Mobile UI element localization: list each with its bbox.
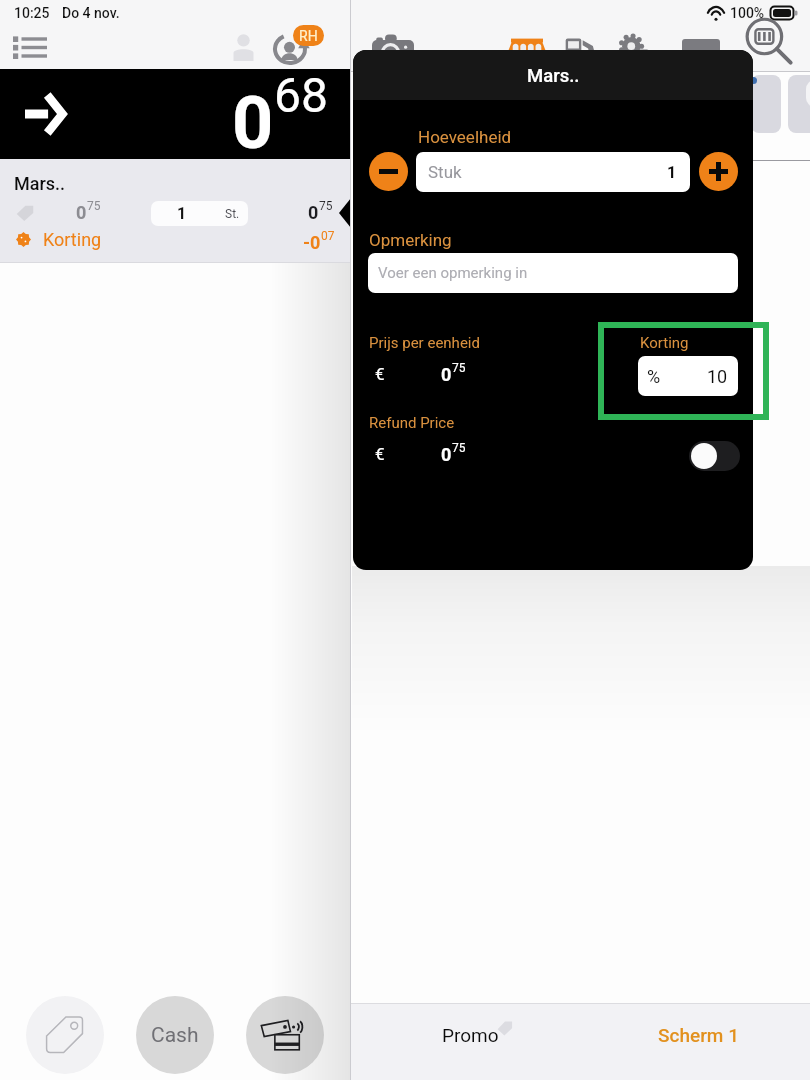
button[interactable]: Refund toggle [689, 441, 740, 471]
staticText: St. [225, 207, 240, 221]
button[interactable]: Cash drawer [676, 26, 726, 72]
button[interactable]: Stuk [416, 152, 690, 192]
staticText: 0 [232, 81, 274, 165]
staticText: 07 [321, 229, 335, 243]
staticText: Hoeveelheid [418, 127, 512, 147]
staticText: € [375, 444, 385, 464]
button[interactable]: Settings [609, 26, 659, 72]
staticText: 0 [441, 364, 452, 385]
staticText: 1 [177, 204, 187, 223]
staticText: 100% [730, 5, 765, 21]
staticText: 75 [319, 199, 333, 213]
staticText: 0 [441, 444, 452, 465]
staticText: Scherm 1 [658, 1024, 739, 1046]
staticText: Stuk [428, 162, 462, 182]
button[interactable]: Discount [26, 996, 104, 1074]
staticText: Mars.. [527, 65, 580, 87]
staticText: 10:25 [14, 5, 50, 21]
button[interactable]: Increase quantity [699, 152, 738, 191]
staticText: Mars.. [14, 173, 66, 194]
button[interactable]: Cash [136, 996, 214, 1074]
staticText: -0 [303, 232, 321, 253]
button[interactable]: 1 [151, 201, 248, 226]
staticText: 75 [452, 441, 466, 455]
button[interactable]: Decrease quantity [369, 152, 408, 191]
staticText: 0 [76, 202, 87, 223]
staticText: Korting [640, 334, 689, 352]
staticText: Promo [442, 1024, 499, 1046]
staticText: 75 [87, 199, 101, 213]
staticText: 0 [308, 202, 319, 223]
staticText: RH [299, 28, 318, 44]
button[interactable]: % [638, 356, 738, 396]
button[interactable]: Scan barcode [744, 19, 794, 65]
button[interactable]: Fuel pump [557, 26, 607, 72]
button[interactable]: Mars.. [0, 159, 351, 262]
staticText: Korting [43, 229, 102, 250]
staticText: Opmerking [369, 230, 452, 250]
button[interactable]: Customer [222, 26, 264, 68]
staticText: 10 [707, 366, 728, 387]
staticText: Prijs per eenheid [369, 334, 480, 352]
staticText: % [647, 366, 661, 387]
staticText: 68 [274, 67, 328, 123]
button[interactable]: Card payment [246, 996, 324, 1074]
staticText: € [375, 364, 385, 384]
button[interactable]: Orders list [12, 29, 48, 65]
staticText: 75 [452, 361, 466, 375]
button[interactable]: Voer een opmerking in [368, 253, 738, 293]
staticText: 1 [667, 163, 677, 182]
staticText: Refund Price [369, 414, 455, 432]
staticText: Do 4 nov. [62, 5, 120, 21]
button[interactable]: Switch user [274, 25, 322, 69]
button[interactable]: Camera [368, 26, 418, 72]
staticText: Cash [151, 1023, 199, 1048]
staticText: Voer een opmerking in [378, 264, 528, 282]
button[interactable]: Shop [502, 26, 552, 72]
button[interactable]: Scherm 1 [658, 1024, 739, 1046]
button[interactable]: Promo [442, 1024, 515, 1046]
